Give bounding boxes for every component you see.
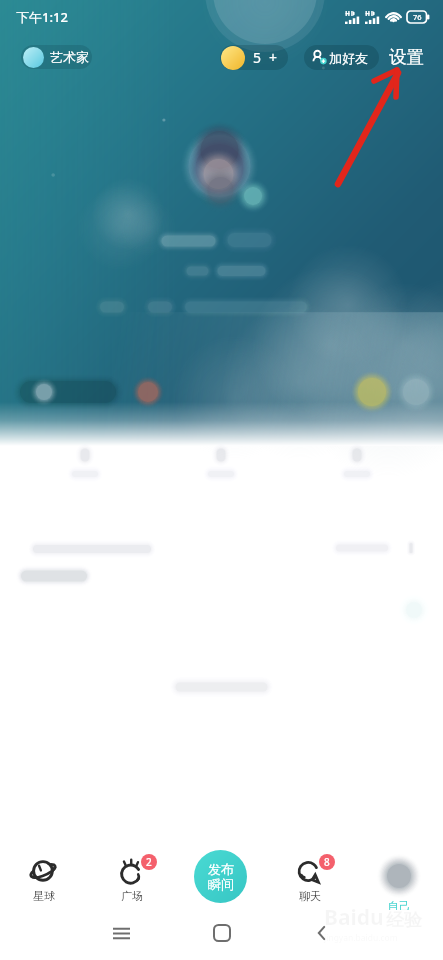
staticText: 经验 bbox=[386, 909, 422, 932]
button[interactable]: Home bbox=[202, 913, 242, 953]
staticText: jingyan.baidu.com bbox=[324, 932, 398, 944]
staticText: 聊天 bbox=[299, 889, 321, 903]
staticText: 加好友 bbox=[329, 50, 368, 66]
staticText: 艺术家 bbox=[50, 49, 89, 65]
button[interactable]: 设置 bbox=[388, 43, 425, 71]
button[interactable]: 5 bbox=[220, 45, 288, 70]
staticText: 5 bbox=[253, 48, 262, 67]
staticText: 自己 bbox=[388, 899, 410, 910]
button[interactable]: 星球 bbox=[0, 798, 88, 910]
button[interactable]: 加好友 bbox=[304, 45, 379, 70]
button[interactable]: 8 bbox=[265, 798, 354, 910]
button[interactable]: Back bbox=[302, 913, 342, 953]
staticText: 2 bbox=[146, 855, 152, 869]
button[interactable]: 2 bbox=[88, 798, 176, 910]
staticText: 8 bbox=[324, 855, 330, 869]
button[interactable]: 艺术家 bbox=[21, 45, 92, 69]
staticText: 广场 bbox=[121, 889, 143, 903]
staticText: Baidu bbox=[324, 903, 384, 932]
staticText: + bbox=[269, 48, 278, 67]
button[interactable]: 发布 瞬间 bbox=[194, 850, 247, 903]
button[interactable]: 自己 bbox=[354, 798, 443, 910]
staticText: 下午1:12 bbox=[16, 8, 68, 26]
staticText: 发布 瞬间 bbox=[208, 861, 234, 892]
button[interactable]: Recent apps bbox=[101, 913, 141, 953]
staticText: 设置 bbox=[389, 46, 424, 68]
staticText: 星球 bbox=[33, 889, 55, 903]
staticText: 76 bbox=[413, 12, 422, 22]
